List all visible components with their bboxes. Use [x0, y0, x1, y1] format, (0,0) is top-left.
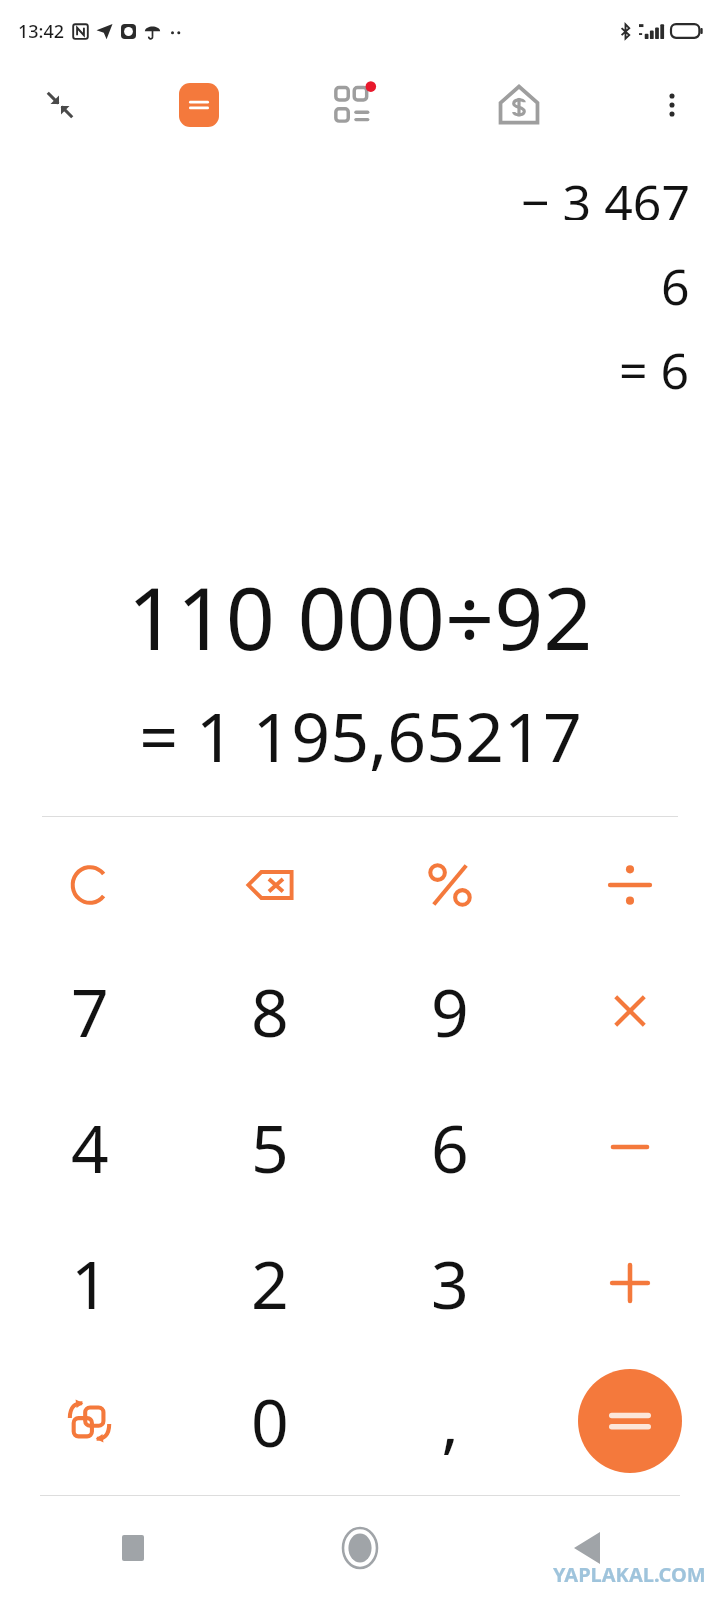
staticText: 2 — [251, 1238, 289, 1328]
staticText: 6 — [431, 1102, 469, 1192]
staticText: 5 — [251, 1102, 289, 1192]
button[interactable]: 7 — [0, 943, 180, 1079]
button[interactable]: Minus — [540, 1079, 720, 1215]
staticText: = 1 195,65217 — [139, 689, 582, 782]
button[interactable]: Equals — [540, 1351, 720, 1491]
button[interactable]: Collapse — [28, 73, 92, 137]
button[interactable]: 0 — [180, 1351, 360, 1491]
button[interactable]: = 6 — [30, 336, 690, 404]
button[interactable]: 5 — [180, 1079, 360, 1215]
staticText: 13:42 — [18, 19, 65, 44]
staticText: 3 — [431, 1238, 469, 1328]
staticText: 4 — [71, 1102, 109, 1192]
staticText: − 3 467 — [521, 168, 690, 220]
staticText: 110 000÷92 — [127, 558, 593, 675]
button[interactable]: 2 — [180, 1215, 360, 1351]
button[interactable]: 6 — [30, 252, 690, 320]
button[interactable]: − 3 467 — [30, 148, 690, 200]
button[interactable]: Percent — [360, 827, 540, 943]
staticText: 8 — [251, 966, 289, 1056]
button[interactable]: Clear — [0, 827, 180, 943]
button[interactable]: Modes — [322, 70, 392, 140]
button[interactable]: 8 — [180, 943, 360, 1079]
button[interactable]: Convert — [0, 1351, 180, 1491]
staticText: 9 — [431, 966, 469, 1056]
staticText: 0 — [251, 1376, 289, 1466]
button[interactable]: 9 — [360, 943, 540, 1079]
button[interactable]: Recents — [96, 1511, 170, 1585]
button[interactable]: Back — [550, 1511, 624, 1585]
button[interactable]: More options — [642, 75, 702, 135]
staticText: , — [441, 1376, 459, 1466]
button[interactable]: Plus — [540, 1215, 720, 1351]
staticText: 7 — [71, 966, 109, 1056]
button[interactable]: Multiply — [540, 943, 720, 1079]
button[interactable]: 4 — [0, 1079, 180, 1215]
button[interactable]: Calculator — [166, 72, 232, 138]
button[interactable]: , — [360, 1351, 540, 1491]
staticText: YAPLAKAL.COM — [553, 1561, 706, 1588]
button[interactable]: Home — [323, 1511, 397, 1585]
staticText: 6 — [661, 252, 690, 320]
button[interactable]: 6 — [360, 1079, 540, 1215]
staticText: 1 — [71, 1238, 109, 1328]
button[interactable]: Backspace — [180, 827, 360, 943]
staticText: = 6 — [619, 336, 690, 404]
button[interactable]: 1 — [0, 1215, 180, 1351]
button[interactable]: 3 — [360, 1215, 540, 1351]
button[interactable]: Divide — [540, 827, 720, 943]
button[interactable]: Mortgage — [484, 70, 554, 140]
